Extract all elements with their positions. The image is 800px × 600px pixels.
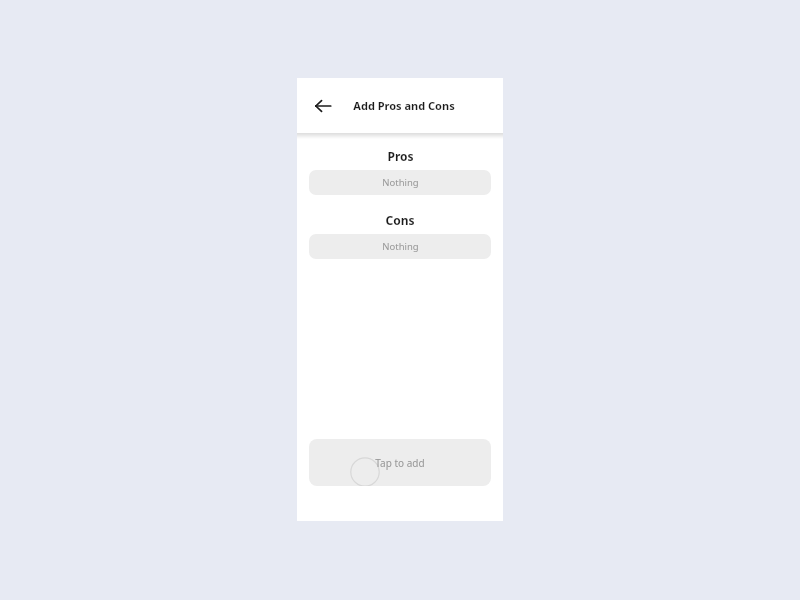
staticText: Nothing	[382, 240, 419, 253]
button[interactable]: Nothing	[309, 170, 491, 195]
button[interactable]: Tap to add	[309, 439, 491, 486]
staticText: Nothing	[382, 176, 419, 189]
staticText: Tap to add	[375, 456, 425, 470]
button[interactable]: Nothing	[309, 234, 491, 259]
button[interactable]: Back	[305, 88, 341, 124]
staticText: Pros	[387, 148, 414, 164]
staticText: Add Pros and Cons	[353, 98, 455, 113]
staticText: Cons	[385, 212, 415, 228]
